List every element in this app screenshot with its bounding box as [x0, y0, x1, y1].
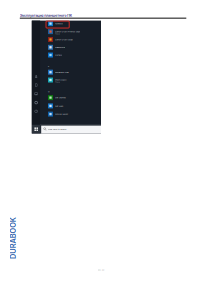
button[interactable]: Settings — [0, 0, 200, 283]
button[interactable]: Get Started — [0, 0, 200, 283]
button[interactable]: Candy Crush Saga — [0, 0, 200, 283]
button[interactable]: Feedback Hub — [0, 0, 200, 283]
staticText: Candy Crush Friends Saga — [0, 19, 112, 44]
button[interactable]: Pictures — [0, 0, 200, 283]
button[interactable]: Groove Music — [0, 0, 200, 283]
button[interactable]: Get Help — [0, 0, 200, 283]
button[interactable]: Documents — [0, 0, 200, 283]
button[interactable]: Fitbit Coach — [0, 0, 200, 283]
staticText: Эксплуатация планшетного ПК — [0, 0, 185, 37]
staticText: G — [30, 79, 46, 104]
staticText: DURABOOK — [0, 193, 200, 281]
staticText: Candy Crush Saga — [0, 27, 35, 52]
button[interactable]: Связаться — [0, 0, 200, 283]
button[interactable]: Камера — [0, 0, 200, 283]
staticText: F — [30, 53, 43, 79]
button[interactable]: Power — [0, 0, 200, 283]
button[interactable]: Cortana — [0, 0, 200, 283]
staticText: Type here to search — [0, 117, 57, 141]
button[interactable]: Candy Crush Friends Saga — [0, 0, 200, 283]
button[interactable]: Start — [0, 0, 200, 283]
button[interactable]: Type here to search — [0, 0, 200, 283]
button[interactable]: Account — [0, 0, 200, 283]
button[interactable]: F — [0, 0, 200, 283]
button[interactable]: G — [0, 0, 200, 283]
